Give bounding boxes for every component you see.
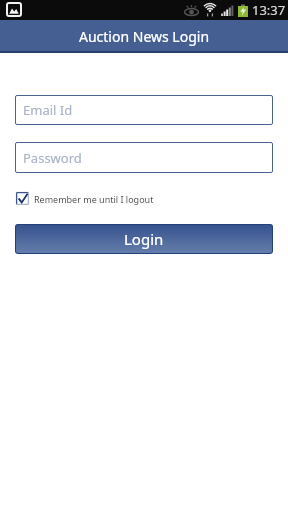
staticText: Email Id <box>23 101 73 119</box>
button[interactable]: Login <box>15 224 273 254</box>
staticText: Auction News Login <box>79 27 210 46</box>
staticText: Remember me until I logout <box>34 193 154 205</box>
staticText: Password <box>23 149 82 167</box>
button[interactable]: Email Id <box>15 95 273 125</box>
button[interactable]: Remember me until I logout <box>16 192 154 205</box>
staticText: 13:37 <box>252 1 286 19</box>
button[interactable]: Password <box>15 142 273 173</box>
staticText: Login <box>124 229 164 249</box>
